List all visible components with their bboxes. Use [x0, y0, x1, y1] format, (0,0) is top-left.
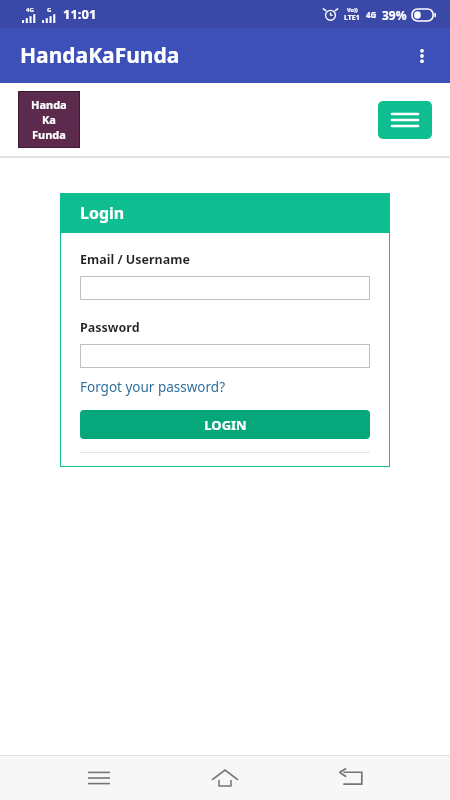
staticText: 11:01	[63, 5, 97, 23]
staticText: Vo))	[347, 6, 358, 13]
staticText: 39%	[382, 7, 407, 23]
button[interactable]: Home	[198, 756, 252, 800]
staticText: LTE1	[344, 13, 360, 23]
staticText: HandaKaFunda	[20, 41, 180, 70]
button[interactable]: Back	[324, 756, 378, 800]
staticText: Login	[80, 202, 125, 224]
staticText: Ka	[42, 112, 56, 127]
button[interactable]: Forgot your password?	[80, 378, 226, 396]
button[interactable]: Handa Ka Funda home	[18, 91, 80, 148]
button[interactable]: Open menu	[378, 101, 432, 139]
button[interactable]: More options	[402, 36, 442, 76]
staticText: 4G	[366, 9, 377, 20]
staticText: 4G	[26, 6, 34, 14]
staticText: Password	[80, 319, 140, 336]
button[interactable]	[80, 344, 370, 368]
button[interactable]: Recent apps	[72, 756, 126, 800]
staticText: Handa	[31, 97, 67, 112]
button[interactable]	[80, 276, 370, 300]
staticText: Email / Username	[80, 251, 190, 268]
button[interactable]: LOGIN	[80, 410, 370, 439]
staticText: LOGIN	[204, 416, 247, 434]
staticText: Funda	[32, 127, 66, 142]
staticText: G	[47, 6, 52, 14]
